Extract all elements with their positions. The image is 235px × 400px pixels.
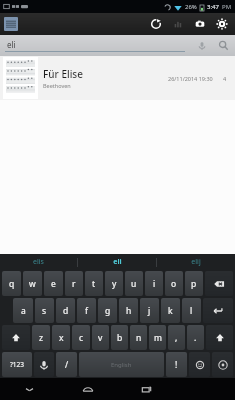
staticText: ! <box>175 359 178 371</box>
button[interactable]: v <box>92 325 109 350</box>
button[interactable]: k <box>161 298 180 323</box>
button[interactable]: r <box>65 271 83 296</box>
button[interactable]: l <box>182 298 201 323</box>
button[interactable]: Settings <box>211 13 233 35</box>
button[interactable]: Emoji <box>189 352 210 377</box>
button[interactable]: Voice search <box>192 36 212 56</box>
button[interactable]: h <box>119 298 138 323</box>
staticText: u <box>131 278 137 290</box>
staticText: eli <box>113 257 122 267</box>
staticText: e <box>51 278 56 290</box>
button[interactable]: z <box>32 325 50 350</box>
staticText: , <box>175 332 178 344</box>
staticText: 4 <box>223 75 227 82</box>
button[interactable]: Settings <box>212 352 233 377</box>
button[interactable]: Refresh <box>145 13 167 35</box>
button[interactable]: Home <box>58 378 117 400</box>
button[interactable]: b <box>111 325 128 350</box>
button[interactable]: eli <box>78 254 156 270</box>
button[interactable]: Backspace <box>205 271 233 296</box>
button[interactable]: Für Elise <box>0 56 235 100</box>
button[interactable]: a <box>13 298 33 323</box>
staticText: i <box>153 278 156 290</box>
button[interactable]: , <box>168 325 185 350</box>
button[interactable]: w <box>23 271 42 296</box>
staticText: w <box>29 278 36 290</box>
staticText: n <box>136 332 142 344</box>
staticText: f <box>85 305 88 317</box>
staticText: z <box>39 332 43 344</box>
button[interactable]: Enter <box>203 298 233 323</box>
staticText: Für Elise <box>43 67 83 81</box>
button[interactable]: g <box>98 298 117 323</box>
button[interactable]: e <box>44 271 63 296</box>
button[interactable]: x <box>52 325 70 350</box>
staticText: v <box>98 332 103 344</box>
staticText: q <box>9 278 15 290</box>
staticText: ?123 <box>10 360 24 369</box>
button[interactable]: ! <box>166 352 187 377</box>
staticText: eli <box>7 39 16 50</box>
button[interactable]: s <box>35 298 54 323</box>
staticText: elis <box>33 257 44 267</box>
staticText: English <box>111 361 132 369</box>
button[interactable]: Search <box>212 35 234 56</box>
staticText: elij <box>191 257 201 267</box>
staticText: 26% <box>185 3 197 11</box>
button[interactable]: c <box>72 325 90 350</box>
button[interactable]: p <box>185 271 203 296</box>
staticText: 26/11/2014 19:30 <box>168 75 213 82</box>
staticText: a <box>21 305 26 317</box>
button[interactable]: f <box>77 298 96 323</box>
button[interactable]: n <box>130 325 147 350</box>
staticText: d <box>63 305 69 317</box>
button[interactable]: i <box>145 271 163 296</box>
button[interactable]: Space <box>79 352 164 377</box>
staticText: / <box>65 359 69 371</box>
staticText: p <box>191 278 197 290</box>
staticText: 3:47 <box>207 3 219 11</box>
staticText: k <box>168 305 173 317</box>
staticText: r <box>72 278 76 290</box>
button[interactable]: u <box>125 271 143 296</box>
button[interactable]: d <box>56 298 75 323</box>
button[interactable]: Camera <box>189 13 211 35</box>
button[interactable]: Recent apps <box>117 378 176 400</box>
staticText: . <box>194 332 197 344</box>
button[interactable]: q <box>2 271 21 296</box>
staticText: PM <box>222 3 232 11</box>
staticText: h <box>126 305 132 317</box>
button[interactable]: Close keyboard <box>0 378 58 400</box>
button[interactable]: o <box>165 271 183 296</box>
button[interactable]: Voice input <box>34 352 54 377</box>
staticText: t <box>92 278 96 290</box>
staticText: l <box>190 305 193 317</box>
staticText: o <box>171 278 177 290</box>
staticText: x <box>59 332 64 344</box>
staticText: Beethoven <box>43 82 71 89</box>
button[interactable]: Shift <box>206 325 233 350</box>
staticText: b <box>117 332 123 344</box>
button[interactable]: j <box>140 298 159 323</box>
button[interactable]: y <box>105 271 123 296</box>
staticText: c <box>79 332 84 344</box>
button[interactable]: App <box>4 17 18 31</box>
button[interactable]: ?123 <box>2 352 32 377</box>
staticText: y <box>112 278 117 290</box>
staticText: j <box>148 305 151 317</box>
button[interactable]: elis <box>0 254 77 270</box>
button[interactable]: Statistics <box>167 13 189 35</box>
staticText: m <box>154 332 162 344</box>
button[interactable]: m <box>149 325 166 350</box>
staticText: g <box>105 305 111 317</box>
button[interactable]: t <box>85 271 103 296</box>
button[interactable]: Shift <box>2 325 30 350</box>
button[interactable]: elij <box>157 254 235 270</box>
button[interactable]: . <box>187 325 204 350</box>
button[interactable]: / <box>56 352 77 377</box>
staticText: s <box>42 305 47 317</box>
